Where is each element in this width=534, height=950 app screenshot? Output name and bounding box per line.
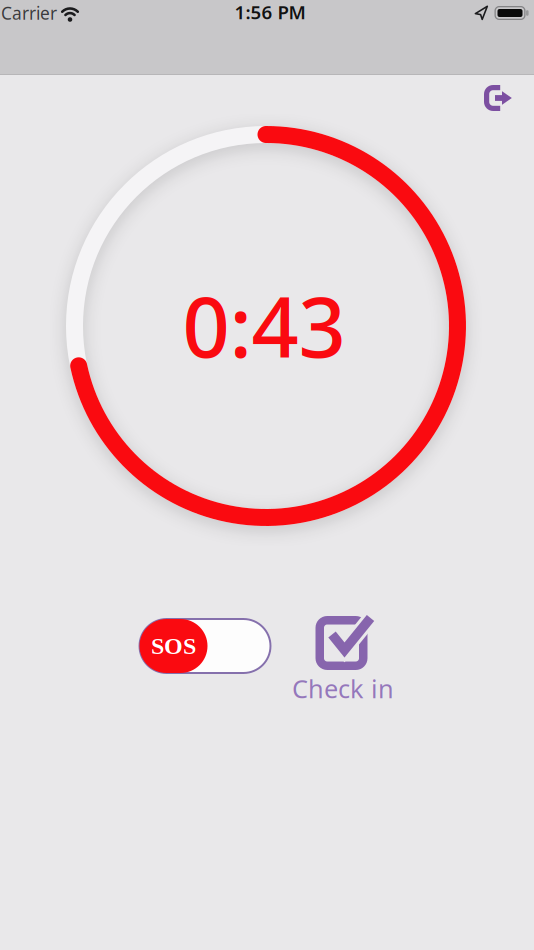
staticText: Carrier [1,1,57,24]
button[interactable]: Log out [484,85,512,111]
staticText: 1:56 PM [234,0,305,24]
staticText: 0:43 [182,271,345,380]
staticText: Check in [292,672,394,705]
button[interactable]: Check in [284,608,404,704]
button[interactable]: SOS [138,618,271,674]
staticText: SOS [151,633,196,659]
